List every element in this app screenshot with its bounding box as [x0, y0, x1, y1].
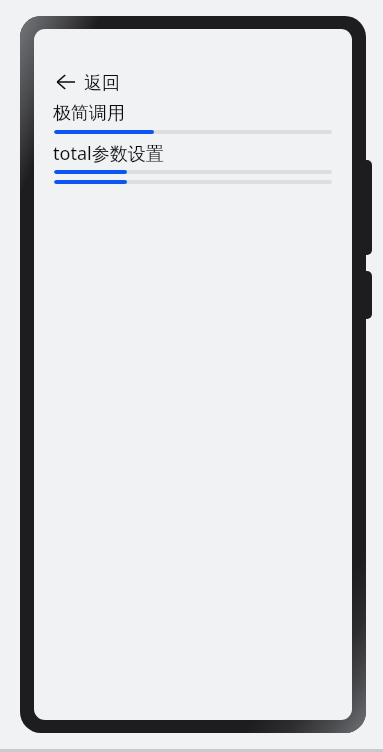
button[interactable]: total参数设置 — [53, 141, 164, 166]
other: Back — [53, 72, 79, 95]
staticText: 返回 — [84, 72, 120, 95]
other: Volume buttons — [348, 160, 372, 255]
button[interactable]: 极简调用 — [53, 102, 125, 125]
other: Power button — [348, 271, 372, 319]
button[interactable]: Back — [53, 72, 120, 95]
